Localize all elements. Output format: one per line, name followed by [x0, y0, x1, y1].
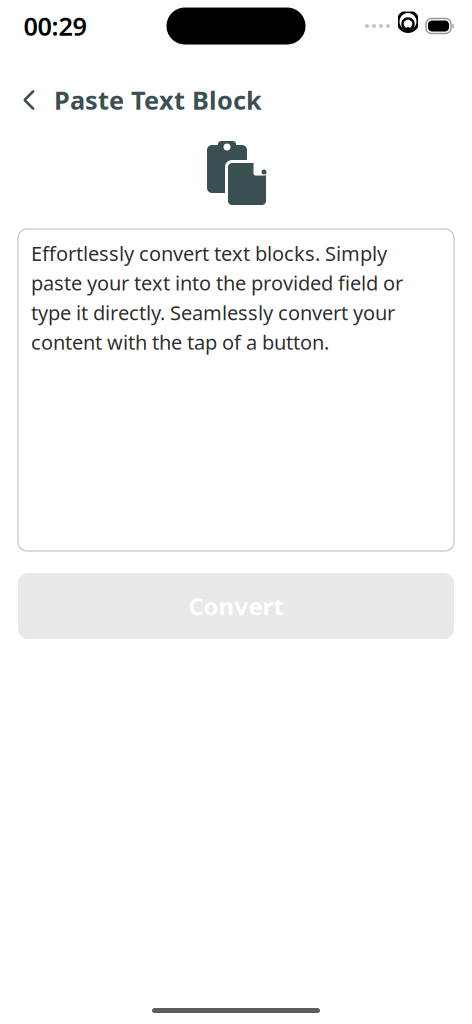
- button[interactable]: Convert: [18, 573, 454, 639]
- staticText: Effortlessly convert text blocks. Simply…: [31, 240, 403, 355]
- button[interactable]: Effortlessly convert text blocks. Simply…: [18, 229, 454, 551]
- button[interactable]: Back: [14, 83, 44, 117]
- staticText: Convert: [188, 590, 283, 622]
- staticText: 00:29: [23, 9, 86, 43]
- staticText: Paste Text Block: [54, 83, 262, 117]
